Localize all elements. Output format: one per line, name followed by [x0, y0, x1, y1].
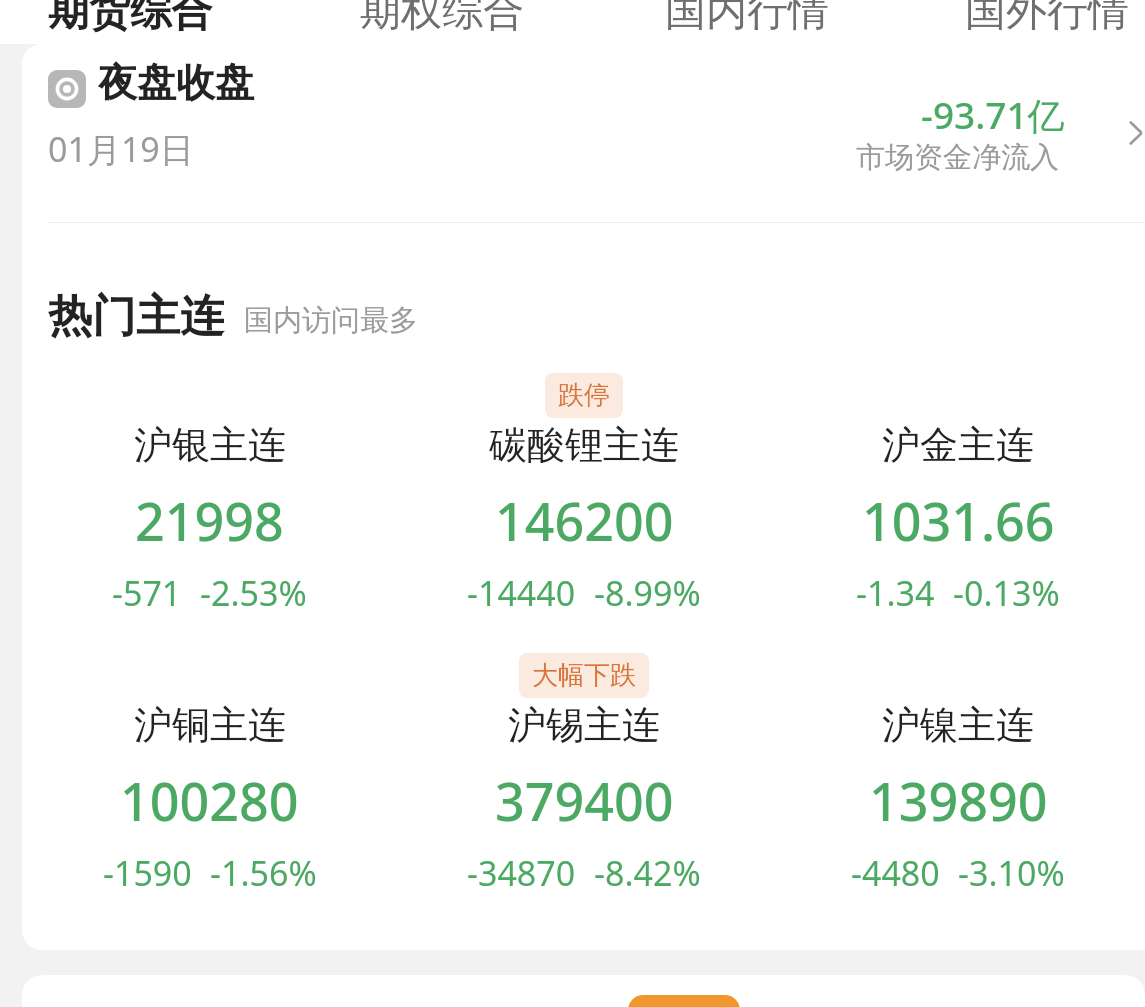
staticText: -14440: [467, 570, 576, 616]
button[interactable]: 夜盘收盘: [22, 44, 1145, 222]
staticText: -0.13%: [953, 570, 1060, 616]
staticText: 沪金主连: [882, 421, 1034, 469]
staticText: -3.10%: [958, 850, 1065, 896]
button[interactable]: 查看资金流入详情: [1114, 112, 1145, 154]
staticText: 沪银主连: [134, 421, 286, 469]
staticText: 跌停: [558, 379, 610, 412]
staticText: 碳酸锂主连: [489, 421, 679, 469]
staticText: -8.42%: [594, 850, 701, 896]
staticText: 146200: [495, 485, 674, 556]
staticText: 379400: [495, 765, 674, 836]
staticText: 热门主连: [48, 289, 224, 344]
staticText: 沪铜主连: [134, 701, 286, 749]
button[interactable]: 沪铜主连: [22, 649, 397, 896]
staticText: -1.34: [856, 570, 935, 616]
staticText: 沪锡主连: [508, 701, 660, 749]
staticText: 大幅下跌: [532, 659, 636, 692]
staticText: -4480: [851, 850, 940, 896]
button[interactable]: 跌停: [397, 369, 771, 616]
button[interactable]: 期货综合: [48, 0, 212, 38]
button[interactable]: 国外行情: [965, 0, 1129, 38]
staticText: 国外行情: [965, 0, 1129, 38]
staticText: 21998: [135, 485, 284, 556]
button[interactable]: 大幅下跌: [397, 649, 771, 896]
staticText: 139890: [869, 765, 1048, 836]
staticText: -1.56%: [210, 850, 317, 896]
staticText: 沪镍主连: [882, 701, 1034, 749]
staticText: 夜盘收盘: [98, 58, 254, 107]
staticText: -1590: [103, 850, 192, 896]
staticText: 1031.66: [862, 485, 1055, 556]
button[interactable]: 期权综合: [360, 0, 524, 38]
staticText: 期权综合: [360, 0, 524, 38]
button[interactable]: 沪金主连: [771, 369, 1145, 616]
button[interactable]: 国内行情: [665, 0, 829, 38]
staticText: 市场资金净流入: [856, 139, 1059, 176]
staticText: 01月19日: [48, 126, 194, 172]
staticText: -2.53%: [200, 570, 307, 616]
staticText: 期货综合: [48, 0, 212, 38]
staticText: 国内访问最多: [244, 302, 418, 339]
staticText: 国内行情: [665, 0, 829, 38]
staticText: -34870: [467, 850, 576, 896]
button[interactable]: 沪镍主连: [771, 649, 1145, 896]
staticText: 100280: [120, 765, 299, 836]
staticText: -93.71亿: [921, 89, 1065, 140]
staticText: -8.99%: [594, 570, 701, 616]
button[interactable]: 沪银主连: [22, 369, 397, 616]
staticText: -571: [112, 570, 182, 616]
